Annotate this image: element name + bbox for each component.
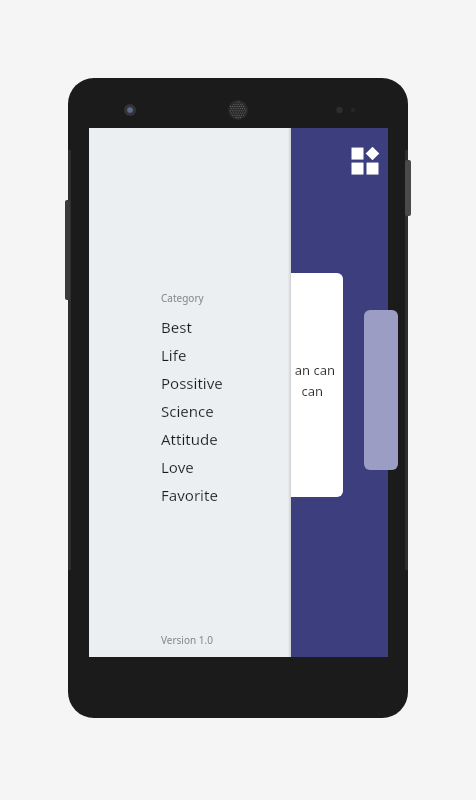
button[interactable]: an can — [249, 273, 343, 497]
staticText: Love — [161, 457, 194, 477]
button[interactable]: Love — [161, 453, 291, 481]
staticText: Version 1.0 — [161, 633, 213, 647]
staticText: Possitive — [161, 373, 223, 393]
button[interactable]: Life — [161, 341, 291, 369]
button[interactable]: Attitude — [161, 425, 291, 453]
button[interactable]: Science — [161, 397, 291, 425]
staticText: Science — [161, 401, 214, 421]
staticText: Attitude — [161, 429, 218, 449]
staticText: can — [301, 382, 323, 400]
button[interactable]: Best — [161, 313, 291, 341]
button[interactable] — [364, 310, 398, 470]
button[interactable]: Possitive — [161, 369, 291, 397]
button[interactable]: Favorite — [161, 481, 291, 509]
staticText: Category — [161, 291, 204, 305]
staticText: an can — [294, 361, 335, 379]
staticText: Best — [161, 317, 192, 337]
staticText: Life — [161, 345, 187, 365]
button[interactable]: Apps — [350, 143, 380, 173]
staticText: Favorite — [161, 485, 218, 505]
